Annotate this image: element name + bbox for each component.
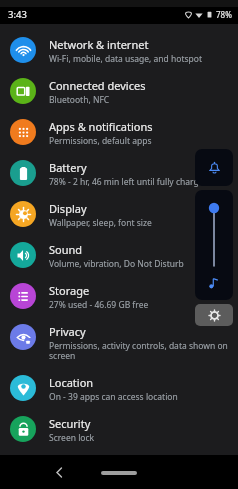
staticText: Screen lock xyxy=(49,432,95,444)
button[interactable]: Media volume xyxy=(195,190,233,300)
button[interactable]: Network & internet xyxy=(0,30,238,71)
button[interactable]: Sound xyxy=(0,235,238,276)
button[interactable]: Home xyxy=(101,471,137,475)
staticText: Storage xyxy=(49,283,90,298)
staticText: Wi-Fi, mobile, data usage, and hotspot xyxy=(49,53,202,65)
staticText: Security xyxy=(49,416,91,431)
staticText: Bluetooth, NFC xyxy=(49,94,110,106)
staticText: 3:43 xyxy=(8,8,27,21)
button[interactable]: Location xyxy=(0,368,238,409)
button[interactable]: Battery xyxy=(0,153,238,194)
staticText: 78% - 2 hr, 46 min left until fully char… xyxy=(49,176,209,188)
staticText: Network & internet xyxy=(49,37,149,52)
staticText: Volume, vibration, Do Not Disturb xyxy=(49,258,184,270)
staticText: 27% used - 46.69 GB free xyxy=(49,299,149,311)
button[interactable]: Volume settings xyxy=(195,304,233,326)
staticText: Sound xyxy=(49,242,83,257)
staticText: Display xyxy=(49,201,87,216)
button[interactable]: Privacy xyxy=(0,317,238,368)
staticText: 78% xyxy=(216,9,232,20)
staticText: On - 39 apps can access location xyxy=(49,391,178,403)
button[interactable]: Connected devices xyxy=(0,71,238,112)
staticText: Battery xyxy=(49,160,87,175)
staticText: Wallpaper, sleep, font size xyxy=(49,217,152,229)
staticText: Connected devices xyxy=(49,78,146,93)
button[interactable]: Security xyxy=(0,409,238,450)
staticText: Apps & notifications xyxy=(49,119,153,134)
button[interactable]: Apps & notifications xyxy=(0,112,238,153)
button[interactable]: Back xyxy=(46,459,72,485)
button[interactable]: Storage xyxy=(0,276,238,317)
staticText: Location xyxy=(49,375,94,390)
staticText: Permissions, activity controls, data sho… xyxy=(49,340,228,362)
button[interactable]: Display xyxy=(0,194,238,235)
button[interactable]: Ringer mode xyxy=(195,149,233,186)
staticText: Privacy xyxy=(49,324,86,339)
staticText: Permissions, default apps xyxy=(49,135,152,147)
